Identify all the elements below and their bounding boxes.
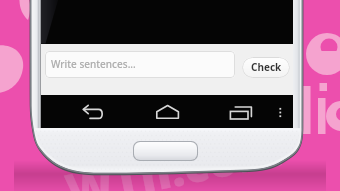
staticText: Check	[251, 60, 282, 74]
button[interactable]: Back	[79, 100, 107, 126]
button[interactable]: Home	[155, 101, 182, 123]
staticText: Write sentences...	[51, 57, 136, 71]
staticText: WTh.com	[60, 116, 288, 191]
button[interactable]: Home button	[133, 141, 198, 161]
button[interactable]: Recent apps	[228, 101, 256, 123]
button[interactable]: More options	[273, 103, 288, 121]
button[interactable]: Check	[242, 57, 290, 78]
button[interactable]: Write sentences...	[45, 51, 235, 78]
